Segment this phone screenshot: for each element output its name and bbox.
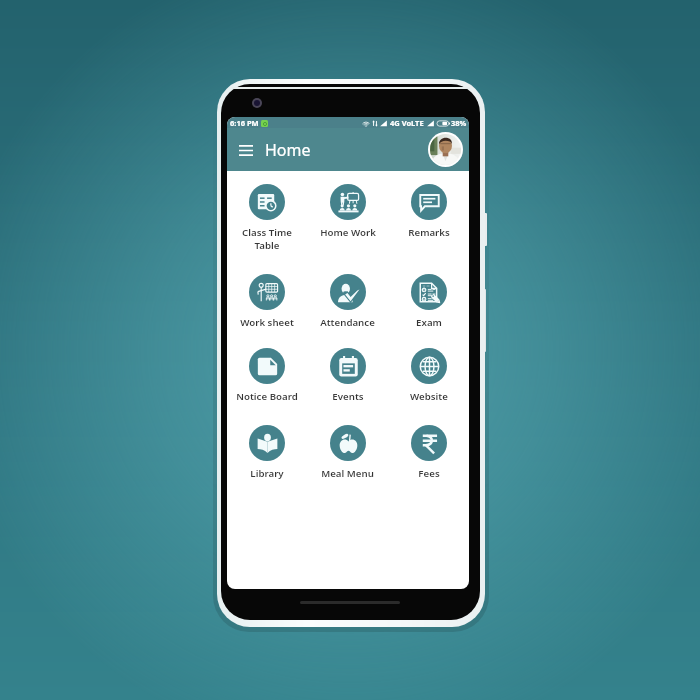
button[interactable]: Fees xyxy=(388,412,469,489)
button[interactable]: Open navigation menu xyxy=(235,139,257,161)
staticText: Home Work xyxy=(320,226,376,239)
staticText: 38% xyxy=(451,118,467,128)
staticText: Work sheet xyxy=(240,316,294,329)
staticText: Home xyxy=(265,139,311,161)
button[interactable]: Home Work xyxy=(307,171,388,261)
staticText: Fees xyxy=(418,467,440,480)
button[interactable]: Profile xyxy=(428,132,463,167)
staticText: 6:16 PM xyxy=(230,118,259,128)
staticText: Attendance xyxy=(320,316,375,329)
button[interactable]: Work sheet xyxy=(227,261,307,335)
staticText: Library xyxy=(250,467,284,480)
staticText: Meal Menu xyxy=(321,467,374,480)
staticText: Events xyxy=(332,390,364,403)
button[interactable]: Class Time Table xyxy=(227,171,307,261)
button[interactable]: Attendance xyxy=(307,261,388,335)
button[interactable]: Meal Menu xyxy=(307,412,388,489)
button[interactable]: Notice Board xyxy=(227,335,307,412)
button[interactable]: Website xyxy=(388,335,469,412)
staticText: 4G VoLTE xyxy=(390,118,424,128)
button[interactable]: Library xyxy=(227,412,307,489)
staticText: Remarks xyxy=(408,226,450,239)
button[interactable]: Events xyxy=(307,335,388,412)
button[interactable]: Remarks xyxy=(388,171,469,261)
staticText: Website xyxy=(410,390,448,403)
staticText: Notice Board xyxy=(236,390,298,403)
staticText: Exam xyxy=(416,316,442,329)
button[interactable]: Exam xyxy=(388,261,469,335)
staticText: Class Time Table xyxy=(242,226,292,252)
